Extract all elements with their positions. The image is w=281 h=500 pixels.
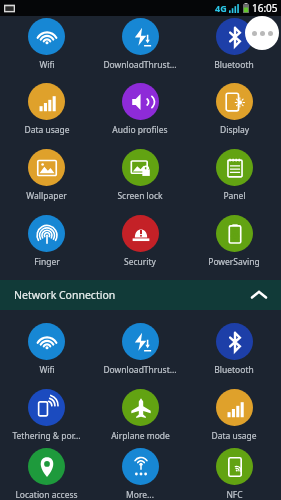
button[interactable]: Tethering & por... xyxy=(0,382,93,448)
button[interactable]: Audio profiles xyxy=(93,76,187,142)
button[interactable]: Network Connection xyxy=(0,280,281,310)
staticText: Panel xyxy=(223,190,246,202)
staticText: DownloadThrust... xyxy=(103,364,177,376)
button[interactable]: Wifi xyxy=(0,18,93,76)
button[interactable]: DownloadThrust... xyxy=(93,18,187,76)
staticText: Data usage xyxy=(211,430,257,442)
staticText: NFC xyxy=(226,489,243,500)
staticText: Screen lock xyxy=(117,190,163,202)
button[interactable]: Bluetooth xyxy=(187,18,281,76)
staticText: Tethering & por... xyxy=(12,430,81,442)
button[interactable]: Finger xyxy=(0,208,93,274)
button[interactable]: DownloadThrust... xyxy=(93,316,187,382)
button[interactable]: Wallpaper xyxy=(0,142,93,208)
button[interactable]: PowerSaving xyxy=(187,208,281,274)
staticText: Wifi xyxy=(39,364,55,376)
button[interactable]: Data usage xyxy=(0,76,93,142)
button[interactable]: Airplane mode xyxy=(93,382,187,448)
staticText: 16:05 xyxy=(252,1,278,15)
staticText: Bluetooth xyxy=(214,59,254,71)
button[interactable]: NFC xyxy=(187,448,281,500)
staticText: Airplane mode xyxy=(111,430,170,442)
button[interactable]: Wifi xyxy=(0,316,93,382)
staticText: Audio profiles xyxy=(112,124,168,136)
button[interactable]: Data usage xyxy=(187,382,281,448)
staticText: Data usage xyxy=(24,124,70,136)
button[interactable]: Security xyxy=(93,208,187,274)
staticText: Bluetooth xyxy=(214,364,254,376)
staticText: DownloadThrust... xyxy=(103,59,177,71)
staticText: Network Connection xyxy=(14,288,116,302)
button[interactable]: Panel xyxy=(187,142,281,208)
staticText: Location access xyxy=(15,489,78,500)
staticText: Wallpaper xyxy=(26,190,67,202)
button[interactable]: Bluetooth xyxy=(187,316,281,382)
button[interactable]: Display xyxy=(187,76,281,142)
button[interactable]: Location access xyxy=(0,448,93,500)
staticText: More... xyxy=(126,489,154,500)
staticText: Security xyxy=(124,256,156,268)
button[interactable]: More options xyxy=(245,16,279,50)
button[interactable]: More... xyxy=(93,448,187,500)
staticText: Display xyxy=(220,124,249,136)
staticText: Wifi xyxy=(39,59,55,71)
button[interactable]: Screen lock xyxy=(93,142,187,208)
staticText: Finger xyxy=(34,256,60,268)
staticText: PowerSaving xyxy=(208,256,260,268)
staticText: 4G xyxy=(215,2,227,14)
